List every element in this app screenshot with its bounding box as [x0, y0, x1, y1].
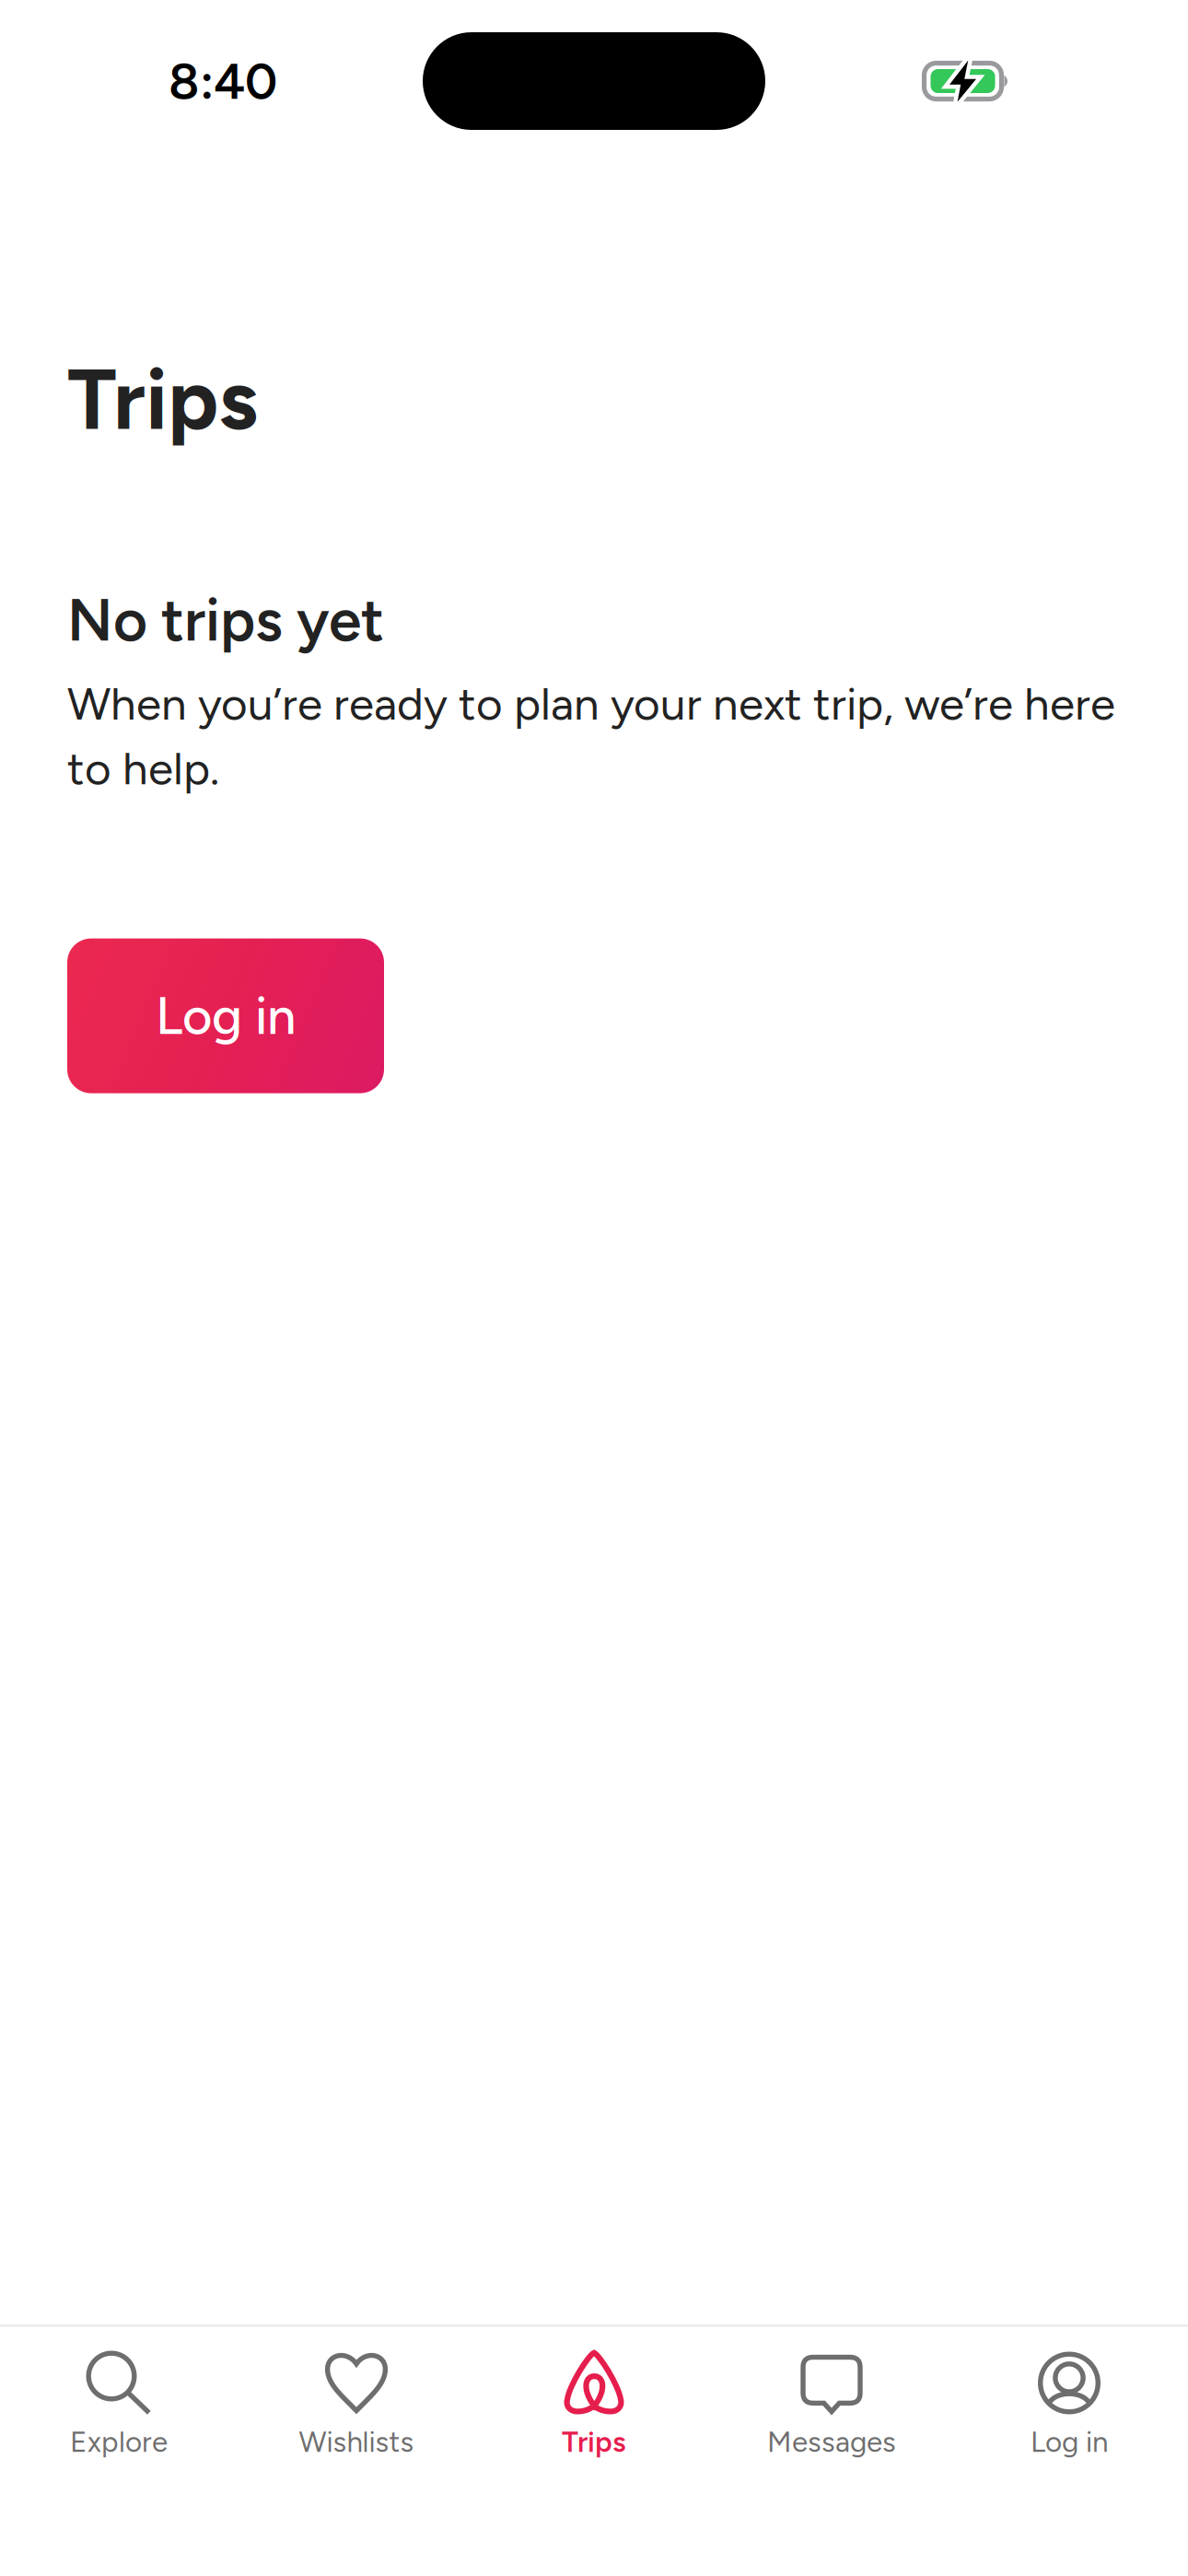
button[interactable]: Explore	[0, 2327, 238, 2459]
button[interactable]: Wishlists	[238, 2327, 475, 2459]
staticText: Log in	[156, 985, 296, 1047]
staticText: Wishlists	[299, 2424, 414, 2459]
button[interactable]: Log in	[67, 938, 384, 1093]
staticText: Trips	[562, 2424, 626, 2459]
staticText: No trips yet	[67, 584, 384, 655]
staticText: When you’re ready to plan your next trip…	[67, 676, 1115, 796]
staticText: Log in	[1031, 2424, 1108, 2459]
button[interactable]: Messages	[713, 2327, 950, 2459]
staticText: Messages	[767, 2424, 896, 2459]
button[interactable]: Trips	[475, 2327, 713, 2459]
staticText: Trips	[67, 348, 258, 450]
staticText: 8:40	[169, 51, 277, 111]
button[interactable]: Log in	[950, 2327, 1188, 2459]
staticText: Explore	[70, 2424, 168, 2459]
